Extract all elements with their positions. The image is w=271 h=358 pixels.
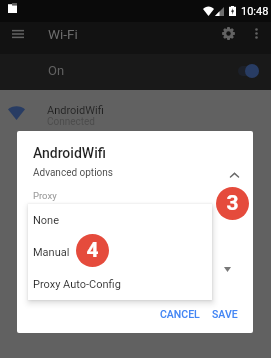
button[interactable]: AndroidWifi — [0, 90, 271, 132]
staticText: 3 — [226, 191, 239, 216]
button[interactable]: Open navigation drawer — [3, 22, 33, 45]
staticText: Wi-Fi — [48, 26, 78, 42]
button[interactable]: CANCEL — [157, 302, 202, 326]
staticText: Advanced options — [33, 167, 113, 179]
staticText: Connected — [47, 116, 96, 128]
staticText: 4 — [86, 238, 99, 263]
button[interactable]: Wi-Fi settings — [217, 22, 240, 45]
staticText: AndroidWifi — [33, 145, 106, 161]
button[interactable]: SAVE — [209, 302, 241, 326]
staticText: SAVE — [212, 308, 238, 320]
staticText: Manual — [33, 246, 70, 259]
staticText: On — [48, 63, 65, 78]
staticText: AndroidWifi — [47, 104, 104, 117]
button[interactable]: None — [28, 204, 212, 236]
button[interactable]: More options — [247, 22, 265, 45]
staticText: 10:48 — [241, 5, 269, 18]
staticText: Proxy Auto-Config — [33, 278, 121, 291]
button[interactable]: Proxy Auto-Config — [28, 268, 212, 300]
button[interactable]: Advanced options — [17, 161, 253, 181]
button[interactable]: On — [0, 54, 271, 90]
staticText: CANCEL — [160, 308, 200, 320]
staticText: Proxy — [33, 190, 57, 201]
button[interactable]: Manual — [28, 236, 212, 268]
staticText: None — [33, 214, 60, 227]
